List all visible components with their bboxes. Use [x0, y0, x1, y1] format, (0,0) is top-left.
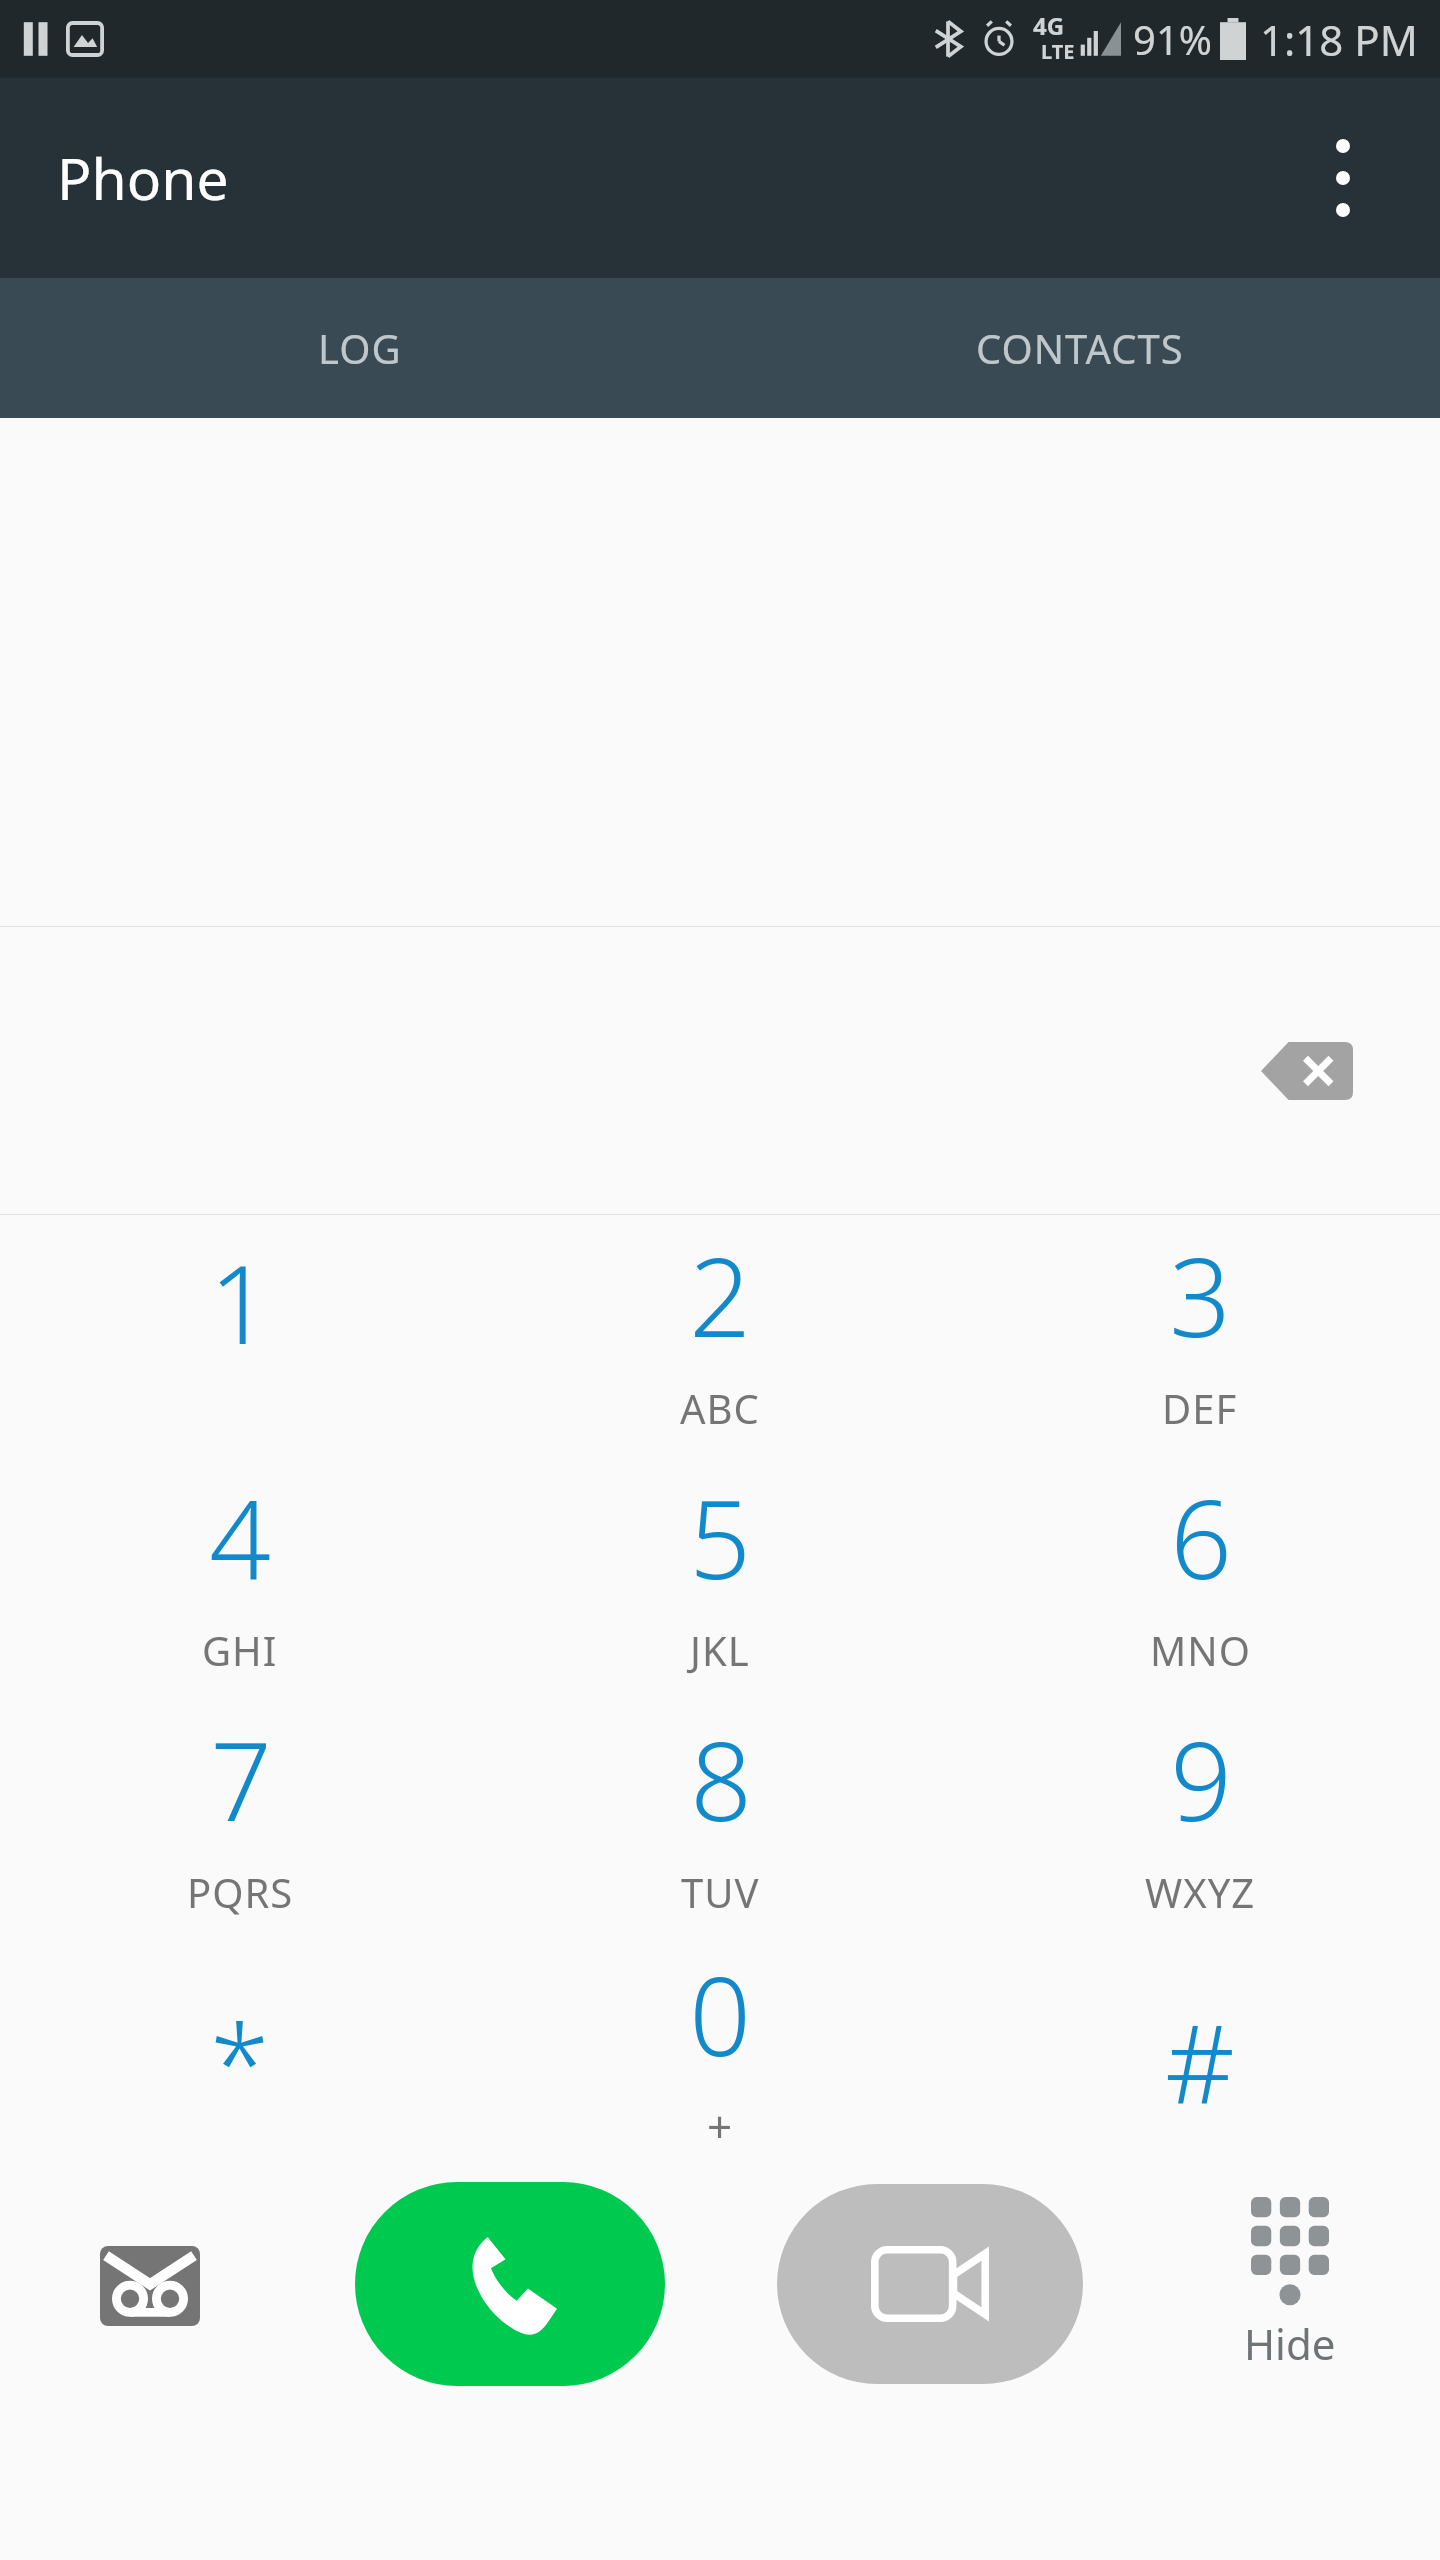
- button[interactable]: 8: [480, 1699, 960, 1941]
- staticText: +: [707, 2096, 734, 2156]
- staticText: 6: [1170, 1464, 1232, 1611]
- button[interactable]: Backspace: [1259, 1023, 1355, 1119]
- button[interactable]: #: [960, 1941, 1440, 2183]
- staticText: 1:18 PM: [1260, 11, 1418, 68]
- button[interactable]: 9: [960, 1699, 1440, 1941]
- staticText: 8: [690, 1706, 752, 1853]
- staticText: 4G: [1033, 9, 1065, 42]
- button[interactable]: 1: [0, 1215, 480, 1457]
- staticText: 2: [689, 1222, 751, 1369]
- staticText: *: [210, 1989, 270, 2136]
- staticText: WXYZ: [1145, 1865, 1256, 1919]
- staticText: 3: [1169, 1222, 1231, 1369]
- staticText: CONTACTS: [976, 321, 1184, 375]
- staticText: 91%: [1133, 12, 1212, 66]
- staticText: DEF: [1162, 1381, 1238, 1435]
- staticText: JKL: [690, 1623, 750, 1677]
- staticText: 5: [689, 1464, 751, 1611]
- button[interactable]: Voicemail: [0, 2183, 300, 2413]
- staticText: #: [1165, 1989, 1235, 2136]
- staticText: MNO: [1150, 1623, 1251, 1677]
- staticText: GHI: [202, 1623, 278, 1677]
- button[interactable]: 3: [960, 1215, 1440, 1457]
- button[interactable]: LOG: [0, 278, 720, 418]
- staticText: LOG: [318, 321, 402, 375]
- staticText: 0: [689, 1941, 751, 2088]
- button[interactable]: CONTACTS: [720, 278, 1440, 418]
- staticText: ABC: [680, 1381, 760, 1435]
- button[interactable]: Hide: [1140, 2183, 1440, 2413]
- staticText: 7: [210, 1706, 272, 1853]
- staticText: TUV: [681, 1865, 760, 1919]
- button[interactable]: 6: [960, 1457, 1440, 1699]
- button[interactable]: 7: [0, 1699, 480, 1941]
- button[interactable]: More options: [1288, 123, 1398, 233]
- button[interactable]: Video call: [777, 2184, 1083, 2384]
- button[interactable]: 4: [0, 1457, 480, 1699]
- staticText: LTE: [1041, 38, 1075, 65]
- staticText: PQRS: [187, 1865, 294, 1919]
- staticText: 9: [1170, 1706, 1232, 1853]
- button[interactable]: 2: [480, 1215, 960, 1457]
- staticText: Phone: [57, 139, 229, 217]
- button[interactable]: 0: [480, 1941, 960, 2183]
- button[interactable]: *: [0, 1941, 480, 2183]
- staticText: Hide: [1244, 2315, 1336, 2372]
- button[interactable]: 5: [480, 1457, 960, 1699]
- staticText: 1: [209, 1229, 271, 1376]
- staticText: 4: [209, 1464, 271, 1611]
- button[interactable]: Call: [355, 2182, 665, 2386]
